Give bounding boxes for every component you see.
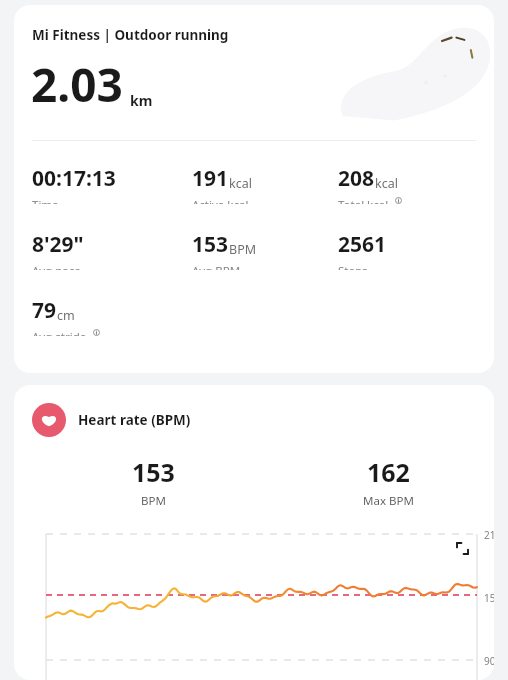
- staticText: 90: [484, 654, 494, 668]
- staticText: 00:17:13: [32, 164, 116, 193]
- staticText: kcal: [229, 175, 252, 192]
- staticText: 2.03: [31, 53, 123, 116]
- staticText: 208: [338, 164, 375, 193]
- staticText: Avg BPM: [192, 263, 241, 270]
- staticText: cm: [57, 307, 75, 324]
- staticText: 2561: [338, 230, 387, 259]
- staticText: Steps: [338, 263, 368, 270]
- staticText: 162: [367, 455, 410, 489]
- staticText: Time: [32, 197, 59, 204]
- staticText: BPM: [229, 241, 257, 258]
- staticText: 210: [484, 528, 494, 542]
- staticText: 191: [192, 164, 229, 193]
- staticText: Active kcal: [192, 197, 249, 204]
- staticText: 153: [192, 230, 229, 259]
- staticText: 79: [32, 296, 57, 325]
- staticText: kcal: [375, 175, 398, 192]
- button[interactable]: Expand chart: [449, 535, 475, 561]
- staticText: 8'29": [32, 230, 84, 259]
- button[interactable]: Heart rate (BPM): [32, 403, 191, 437]
- staticText: 153: [132, 455, 175, 489]
- staticText: Total kcal: [338, 197, 389, 204]
- staticText: Heart rate (BPM): [78, 411, 191, 429]
- staticText: BPM: [141, 493, 166, 507]
- staticText: km: [130, 91, 153, 110]
- staticText: Avg pace: [32, 263, 81, 270]
- staticText: Max BPM: [363, 493, 414, 507]
- staticText: Mi Fitness | Outdoor running: [32, 26, 229, 44]
- staticText: Avg stride: [32, 329, 87, 336]
- staticText: 150: [484, 591, 494, 605]
